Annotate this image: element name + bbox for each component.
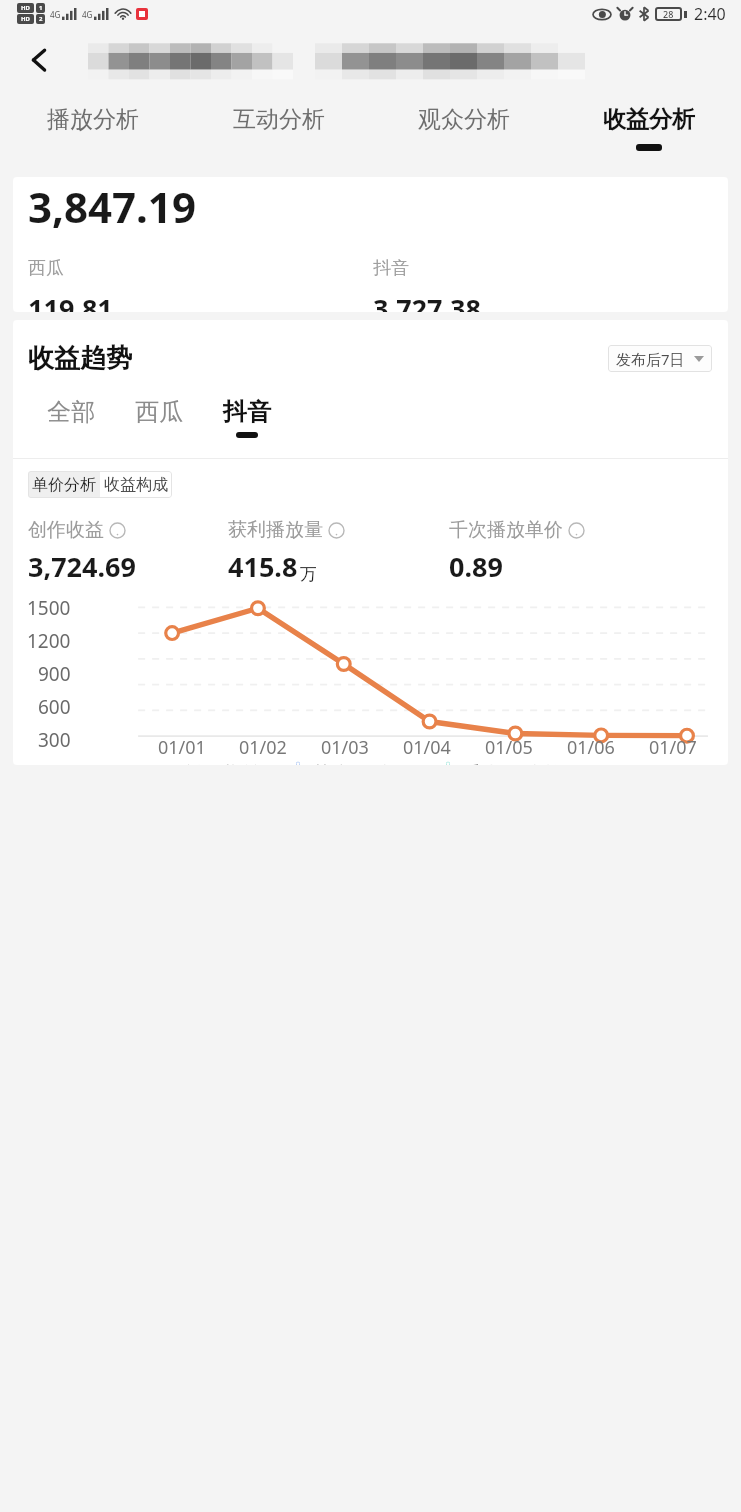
staticText: 收益趋势 [28, 342, 132, 375]
staticText: 119.81 [28, 290, 113, 312]
staticText: 观众分析 [418, 105, 510, 134]
button[interactable]: 千次播放单价 [439, 762, 582, 765]
staticText: 01/04 [403, 735, 451, 760]
button[interactable]: 收益分析 [556, 93, 741, 167]
staticText: 28 [663, 8, 674, 20]
staticText: 单价分析 [32, 475, 96, 495]
staticText: 01/01 [158, 735, 206, 760]
button[interactable]: 观众分析 [371, 93, 556, 167]
staticText: 2:40 [694, 3, 726, 25]
staticText: 0.89 [449, 548, 503, 585]
staticText: 4G [50, 9, 61, 20]
staticText: 1 [39, 4, 43, 12]
staticText: 415.8 [228, 548, 298, 585]
staticText: 抖音 [223, 397, 271, 427]
button[interactable]: Back [12, 33, 66, 87]
staticText: 创作收益 [182, 762, 262, 765]
staticText: 播放分析 [47, 105, 139, 134]
staticText: 2 [39, 15, 43, 23]
staticText: 01/06 [567, 735, 615, 760]
staticText: HD [21, 4, 30, 12]
staticText: 01/05 [485, 735, 533, 760]
staticText: 获利播放量 [228, 518, 323, 542]
staticText: 600 [38, 694, 71, 720]
staticText: 收益构成 [104, 475, 168, 495]
button[interactable]: 抖音 [203, 396, 291, 458]
staticText: 西瓜 [28, 257, 64, 280]
button[interactable]: 互动分析 [186, 93, 371, 167]
staticText: 3,727.38 [373, 290, 481, 312]
button[interactable]: 获利播放量 [289, 762, 412, 765]
button[interactable]: 播放分析 [0, 93, 186, 167]
staticText: 西瓜 [135, 397, 183, 427]
button[interactable]: 全部 [27, 396, 115, 458]
staticText: 万 [300, 564, 317, 585]
staticText: 01/02 [239, 735, 287, 760]
staticText: 抖音 [373, 257, 409, 280]
staticText: 创作收益 [28, 518, 104, 542]
staticText: 3,847.19 [28, 178, 196, 235]
staticText: 千次播放单价 [449, 518, 563, 542]
staticText: 01/03 [321, 735, 369, 760]
staticText: HD [21, 15, 30, 23]
staticText: 3,724.69 [28, 548, 136, 585]
staticText: 900 [38, 661, 71, 687]
staticText: 收益分析 [603, 105, 695, 134]
staticText: 300 [38, 727, 71, 753]
staticText: 全部 [47, 397, 95, 427]
staticText: 1500 [27, 595, 71, 621]
staticText: 千次播放单价 [462, 762, 582, 765]
button[interactable]: 单价分析 [28, 471, 100, 498]
staticText: 获利播放量 [312, 762, 412, 765]
staticText: 1200 [27, 628, 71, 654]
staticText: 4G [82, 9, 93, 20]
button[interactable]: 发布后7日 [608, 345, 712, 372]
button[interactable]: 西瓜 [115, 396, 203, 458]
button[interactable]: 收益构成 [100, 471, 172, 498]
staticText: 01/07 [649, 735, 697, 760]
staticText: 发布后7日 [616, 349, 685, 369]
button[interactable]: 创作收益 [159, 762, 262, 765]
staticText: 互动分析 [233, 105, 325, 134]
